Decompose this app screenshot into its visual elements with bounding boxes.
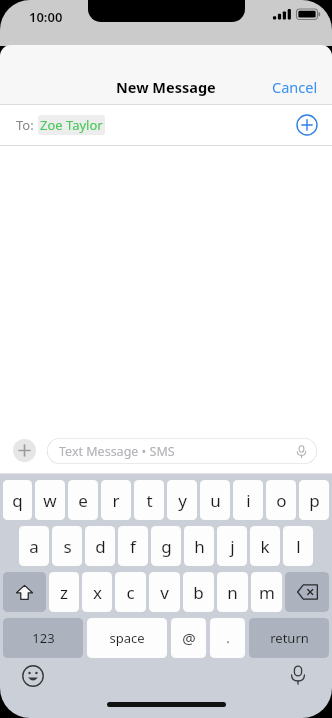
staticText: g xyxy=(161,535,172,558)
other: Dictate message xyxy=(295,445,308,458)
staticText: 10:00 xyxy=(29,8,63,26)
button[interactable]: n xyxy=(217,572,248,612)
button[interactable]: d xyxy=(85,526,115,566)
staticText: n xyxy=(227,581,238,604)
button[interactable]: Text Message • SMS xyxy=(47,438,317,464)
button[interactable]: Backspace xyxy=(285,572,329,612)
button[interactable]: Add attachment xyxy=(13,439,36,462)
staticText: f xyxy=(130,535,136,558)
button[interactable]: v xyxy=(149,572,180,612)
button[interactable]: To: xyxy=(0,105,332,145)
staticText: l xyxy=(296,535,301,558)
button[interactable]: j xyxy=(217,526,247,566)
staticText: x xyxy=(93,581,102,604)
staticText: k xyxy=(260,535,270,558)
staticText: . xyxy=(226,629,230,647)
staticText: w xyxy=(43,489,57,512)
button[interactable]: e xyxy=(68,480,98,520)
staticText: t xyxy=(146,489,153,512)
button[interactable]: Add contact xyxy=(296,114,318,136)
button[interactable]: w xyxy=(35,480,65,520)
button[interactable]: l xyxy=(283,526,313,566)
button[interactable]: q xyxy=(3,480,32,520)
button[interactable]: u xyxy=(200,480,230,520)
button[interactable]: m xyxy=(251,572,282,612)
staticText: r xyxy=(112,489,120,512)
staticText: m xyxy=(259,581,275,604)
staticText: s xyxy=(63,535,72,558)
staticText: q xyxy=(12,489,23,512)
button[interactable]: o xyxy=(266,480,296,520)
staticText: u xyxy=(210,489,221,512)
button[interactable]: . xyxy=(210,618,245,658)
staticText: h xyxy=(194,535,205,558)
button[interactable]: Cancel xyxy=(258,69,332,104)
button[interactable]: p xyxy=(299,480,329,520)
button[interactable]: space xyxy=(87,618,167,658)
button[interactable]: @ xyxy=(171,618,206,658)
staticText: @ xyxy=(182,628,196,648)
button[interactable]: k xyxy=(250,526,280,566)
staticText: v xyxy=(160,581,169,604)
button[interactable]: Dictate xyxy=(288,665,308,685)
staticText: b xyxy=(193,581,204,604)
button[interactable]: g xyxy=(151,526,181,566)
button[interactable]: s xyxy=(52,526,82,566)
button[interactable]: c xyxy=(115,572,146,612)
staticText: Cancel xyxy=(272,77,318,97)
button[interactable]: Shift xyxy=(3,572,46,612)
button[interactable]: h xyxy=(184,526,214,566)
staticText: To: xyxy=(16,116,34,134)
button[interactable]: x xyxy=(82,572,112,612)
staticText: Zoe Taylor xyxy=(40,116,103,134)
staticText: p xyxy=(309,489,320,512)
button[interactable]: 123 xyxy=(3,618,83,658)
staticText: c xyxy=(126,581,135,604)
button[interactable]: t xyxy=(134,480,164,520)
staticText: z xyxy=(60,581,68,604)
staticText: Text Message • SMS xyxy=(59,443,175,460)
staticText: j xyxy=(230,535,235,558)
button[interactable]: f xyxy=(118,526,148,566)
button[interactable]: i xyxy=(233,480,263,520)
staticText: e xyxy=(78,489,88,512)
button[interactable]: z xyxy=(49,572,79,612)
staticText: i xyxy=(246,489,251,512)
staticText: 123 xyxy=(32,629,55,647)
staticText: o xyxy=(276,489,287,512)
button[interactable]: a xyxy=(19,526,49,566)
button[interactable]: b xyxy=(183,572,214,612)
staticText: d xyxy=(95,535,106,558)
button[interactable]: Emoji xyxy=(22,665,44,687)
button[interactable]: y xyxy=(167,480,197,520)
staticText: y xyxy=(178,489,187,512)
button[interactable]: return xyxy=(249,618,329,658)
button[interactable]: r xyxy=(101,480,131,520)
staticText: New Message xyxy=(116,77,216,97)
staticText: return xyxy=(270,629,309,647)
staticText: a xyxy=(29,535,39,558)
staticText: space xyxy=(109,629,145,647)
